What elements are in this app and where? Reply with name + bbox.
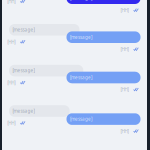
staticText: [HH] [7, 39, 15, 45]
staticText: [message] [70, 74, 92, 81]
button[interactable]: [message] [9, 24, 79, 45]
staticText: [message] [70, 116, 92, 122]
staticText: [HH] [120, 86, 128, 93]
button[interactable]: [message] [66, 31, 140, 52]
staticText: [HH] [120, 46, 128, 52]
button[interactable]: [message] [9, 105, 70, 126]
staticText: [message] [70, 34, 92, 40]
button[interactable]: [message] [66, 0, 140, 13]
staticText: [HH] [7, 0, 15, 4]
staticText: [HH] [120, 128, 128, 134]
staticText: [message] [13, 27, 35, 33]
button[interactable]: [message] [9, 0, 75, 4]
staticText: [HH] [7, 120, 15, 126]
button[interactable]: [message] [66, 72, 140, 93]
staticText: [HH] [7, 80, 15, 86]
staticText: [message] [13, 108, 35, 114]
staticText: [message] [13, 67, 35, 74]
staticText: [message] [70, 0, 92, 1]
button[interactable]: [message] [9, 65, 83, 86]
staticText: [HH] [120, 7, 128, 13]
button[interactable]: [message] [66, 113, 140, 134]
